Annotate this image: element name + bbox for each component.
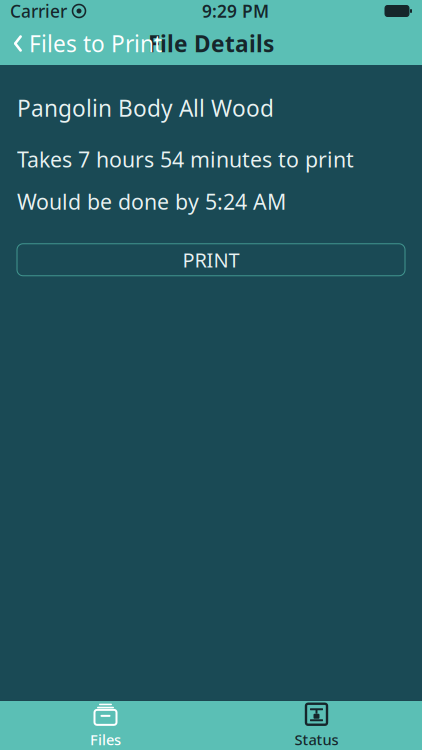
staticText: Status [294, 730, 338, 749]
button[interactable]: Files [0, 701, 211, 749]
staticText: Files [90, 730, 121, 749]
staticText: Takes 7 hours 54 minutes to print [17, 145, 354, 173]
staticText: Files to Print [29, 28, 162, 58]
staticText: File Details [148, 28, 274, 58]
staticText: 9:29 PM [202, 0, 269, 22]
staticText: PRINT [182, 246, 239, 273]
button[interactable]: Files to Print [0, 22, 162, 64]
button[interactable]: PRINT [17, 244, 405, 276]
staticText: Would be done by 5:24 AM [17, 187, 286, 216]
staticText: Carrier [10, 0, 67, 22]
button[interactable]: Status [211, 701, 422, 749]
staticText: Pangolin Body All Wood [17, 93, 274, 123]
